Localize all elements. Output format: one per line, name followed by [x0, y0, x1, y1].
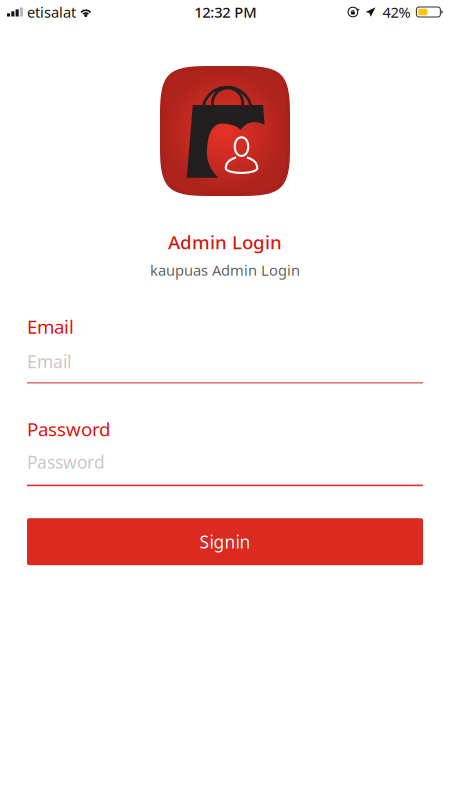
- staticText: Admin Login: [168, 230, 282, 254]
- staticText: etisalat: [27, 2, 76, 22]
- button[interactable]: Password: [27, 451, 423, 486]
- staticText: kaupuas Admin Login: [150, 260, 300, 280]
- staticText: Password: [27, 417, 110, 441]
- button[interactable]: Email: [27, 350, 423, 384]
- staticText: Password: [27, 451, 105, 474]
- staticText: Email: [27, 350, 71, 373]
- staticText: 42%: [382, 2, 410, 22]
- staticText: 12:32 PM: [194, 2, 256, 22]
- staticText: Signin: [199, 530, 250, 553]
- button[interactable]: Signin: [27, 518, 423, 565]
- staticText: Email: [27, 314, 74, 339]
